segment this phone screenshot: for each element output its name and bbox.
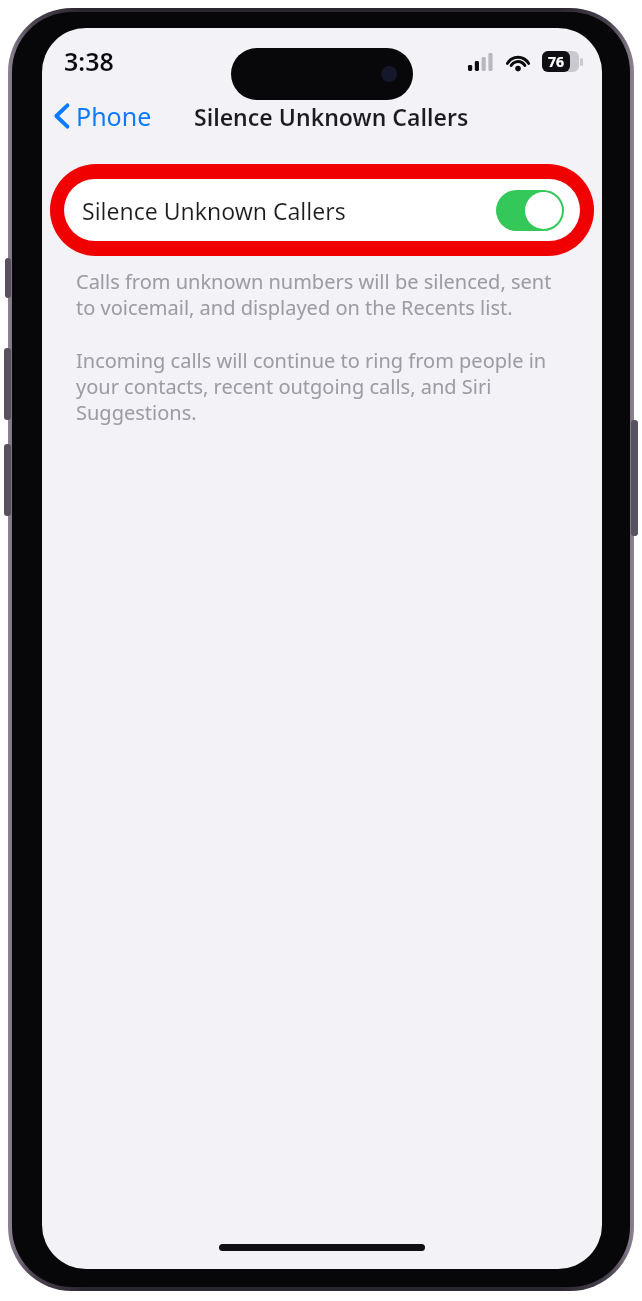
button[interactable]: Phone <box>42 93 164 139</box>
staticText: Silence Unknown Callers <box>82 195 346 226</box>
staticText: Silence Unknown Callers <box>194 101 469 132</box>
staticText: 76 <box>548 52 565 71</box>
staticText: Phone <box>76 99 152 133</box>
button[interactable]: Silence Unknown Callers <box>64 179 580 241</box>
button[interactable]: Silence Unknown Callers toggle, on <box>496 190 564 231</box>
staticText: Calls from unknown numbers will be silen… <box>76 268 572 321</box>
staticText: Incoming calls will continue to ring fro… <box>76 347 572 426</box>
staticText: 3:38 <box>64 44 114 78</box>
